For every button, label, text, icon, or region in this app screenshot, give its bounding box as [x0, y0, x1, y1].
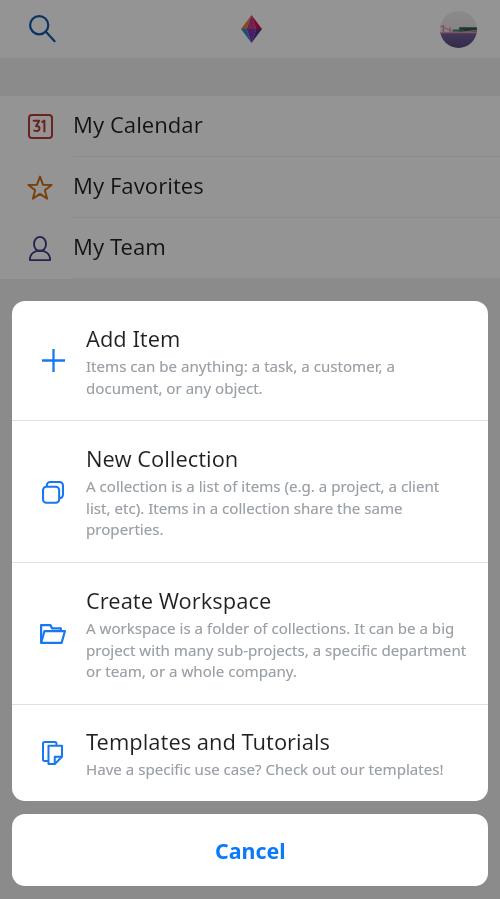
button[interactable]: Search	[23, 9, 63, 49]
button[interactable]: Profile	[440, 11, 477, 48]
staticText: Items can be anything: a task, a custome…	[86, 356, 467, 398]
staticText: My Team	[73, 231, 166, 261]
staticText: Templates and Tutorials	[86, 727, 331, 757]
button[interactable]: My Calendar	[0, 96, 500, 157]
staticText: Create Workspace	[86, 586, 272, 616]
staticText: My Calendar	[73, 109, 203, 139]
button[interactable]: My Favorites	[0, 157, 500, 218]
staticText: Cancel	[215, 836, 286, 865]
button[interactable]: Add Item	[12, 301, 488, 420]
button[interactable]: Cancel	[12, 814, 488, 886]
staticText: Add Item	[86, 324, 181, 354]
staticText: New Collection	[86, 444, 239, 474]
staticText: A collection is a list of items (e.g. a …	[86, 476, 467, 539]
button[interactable]: Templates and Tutorials	[12, 705, 488, 801]
staticText: A workspace is a folder of collections. …	[86, 618, 467, 681]
button[interactable]: Create Workspace	[12, 563, 488, 704]
staticText: My Favorites	[73, 170, 204, 200]
button[interactable]: New Collection	[12, 421, 488, 562]
staticText: Have a specific use case? Check out our …	[86, 759, 444, 780]
button[interactable]: My Team	[0, 218, 500, 279]
